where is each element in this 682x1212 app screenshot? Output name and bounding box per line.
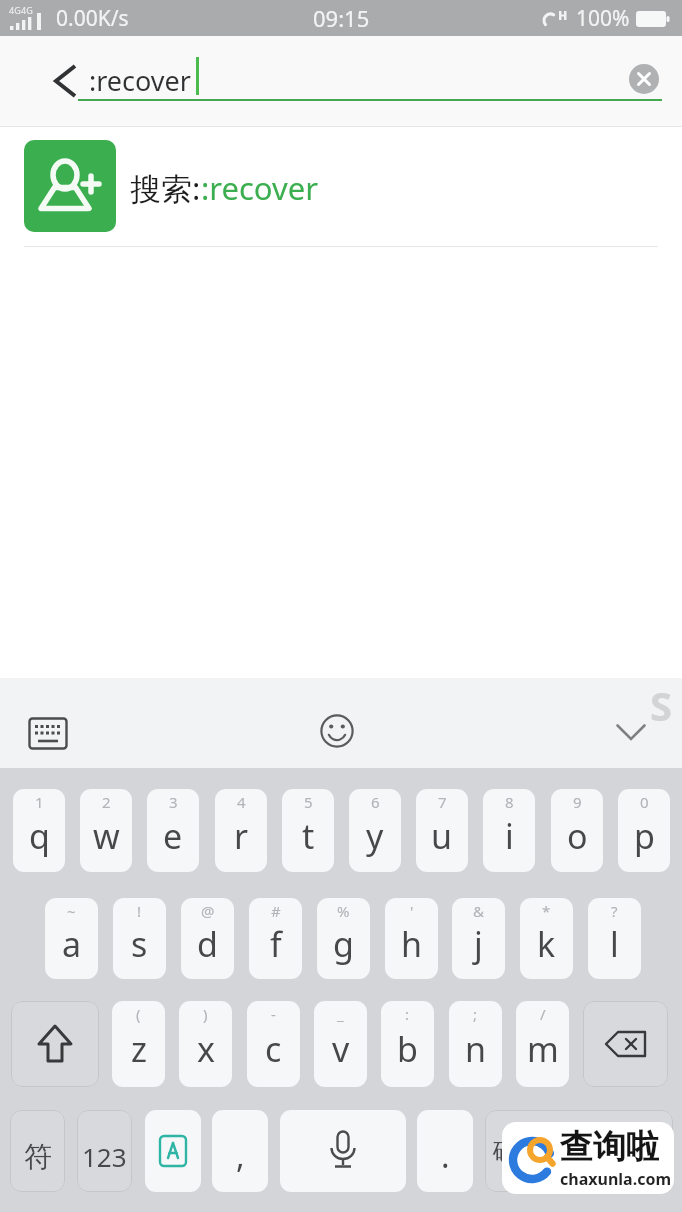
button[interactable]: 7: [416, 789, 468, 872]
button[interactable]: ~: [45, 898, 98, 979]
button[interactable]: ;: [449, 1001, 502, 1087]
staticText: i: [505, 813, 514, 859]
button[interactable]: *: [520, 898, 573, 979]
staticText: h: [401, 921, 423, 967]
button[interactable]: 9: [551, 789, 603, 872]
staticText: #: [271, 901, 281, 921]
staticText: /: [540, 1004, 546, 1024]
staticText: q: [29, 813, 50, 859]
button[interactable]: @: [181, 898, 234, 979]
staticText: !: [137, 901, 142, 921]
staticText: f: [270, 921, 282, 967]
button[interactable]: [598, 704, 664, 760]
button[interactable]: [145, 1110, 201, 1192]
staticText: 确定: [493, 1136, 541, 1166]
button[interactable]: :: [381, 1001, 434, 1087]
button[interactable]: 123: [77, 1110, 132, 1192]
button[interactable]: 5: [282, 789, 334, 872]
button[interactable]: 确定: [485, 1110, 673, 1192]
button[interactable]: [280, 1110, 406, 1192]
staticText: (: [136, 1004, 141, 1024]
button[interactable]: 2: [80, 789, 132, 872]
staticText: 3: [169, 792, 178, 812]
staticText: w: [93, 813, 120, 859]
staticText: :recover: [89, 62, 191, 99]
staticText: x: [197, 1026, 215, 1072]
button[interactable]: 搜索:: [0, 127, 682, 246]
button[interactable]: .: [417, 1110, 473, 1192]
staticText: -: [271, 1004, 276, 1024]
button[interactable]: 4: [215, 789, 267, 872]
button[interactable]: !: [113, 898, 166, 979]
button[interactable]: 8: [483, 789, 535, 872]
button[interactable]: [583, 1001, 668, 1087]
staticText: ,: [236, 1134, 245, 1178]
staticText: 0: [640, 792, 649, 812]
staticText: ': [410, 901, 414, 921]
staticText: y: [366, 813, 384, 859]
staticText: a: [62, 921, 82, 967]
staticText: 8: [505, 792, 514, 812]
button[interactable]: [629, 64, 659, 94]
staticText: t: [302, 813, 315, 859]
button[interactable]: [36, 44, 92, 118]
staticText: _: [337, 1004, 344, 1024]
button[interactable]: [305, 702, 369, 760]
staticText: 2: [102, 792, 111, 812]
button[interactable]: /: [516, 1001, 569, 1087]
staticText: &: [473, 901, 484, 921]
staticText: m: [527, 1026, 559, 1072]
staticText: 4: [237, 792, 246, 812]
button[interactable]: 0: [618, 789, 670, 872]
button[interactable]: 1: [13, 789, 65, 872]
staticText: ): [203, 1004, 208, 1024]
staticText: l: [610, 921, 619, 967]
button[interactable]: ): [179, 1001, 232, 1087]
staticText: chaxunla.com: [560, 1168, 671, 1190]
staticText: u: [431, 813, 453, 859]
staticText: b: [397, 1026, 418, 1072]
staticText: r: [234, 813, 249, 859]
button[interactable]: _: [314, 1001, 367, 1087]
staticText: o: [567, 813, 588, 859]
staticText: k: [537, 921, 556, 967]
button[interactable]: %: [317, 898, 370, 979]
staticText: S: [650, 678, 673, 732]
staticText: v: [332, 1026, 350, 1072]
button[interactable]: [12, 705, 84, 761]
button[interactable]: 6: [349, 789, 401, 872]
staticText: ;: [473, 1004, 478, 1024]
staticText: 4G: [21, 4, 33, 16]
button[interactable]: [11, 1001, 99, 1087]
button[interactable]: ?: [588, 898, 641, 979]
staticText: 5: [304, 792, 313, 812]
staticText: j: [474, 921, 483, 967]
button[interactable]: ': [385, 898, 438, 979]
staticText: s: [131, 921, 148, 967]
staticText: n: [465, 1026, 487, 1072]
staticText: :: [405, 1004, 410, 1024]
staticText: 7: [438, 792, 447, 812]
staticText: 09:15: [313, 3, 370, 33]
staticText: g: [333, 921, 354, 967]
button[interactable]: 3: [147, 789, 199, 872]
staticText: :recover: [201, 167, 319, 209]
staticText: e: [163, 813, 183, 859]
staticText: 123: [82, 1139, 127, 1174]
staticText: z: [131, 1026, 147, 1072]
button[interactable]: -: [247, 1001, 300, 1087]
staticText: 搜索:: [130, 167, 201, 209]
staticText: 0.00K/s: [56, 4, 129, 33]
staticText: 6: [371, 792, 380, 812]
button[interactable]: (: [112, 1001, 165, 1087]
button[interactable]: #: [249, 898, 302, 979]
button[interactable]: ,: [212, 1110, 268, 1192]
staticText: ~: [67, 901, 76, 921]
staticText: ?: [611, 901, 618, 921]
staticText: 查询啦: [560, 1126, 659, 1168]
button[interactable]: &: [452, 898, 505, 979]
staticText: @: [201, 901, 215, 921]
staticText: 1: [35, 792, 44, 812]
staticText: 100%: [576, 4, 630, 33]
button[interactable]: 符: [10, 1110, 65, 1192]
